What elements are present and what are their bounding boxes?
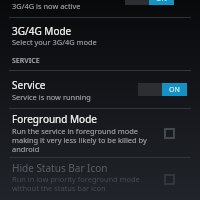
- staticText: Hide Status Bar Icon: [12, 161, 108, 175]
- button[interactable]: 3G/4G Mode: [0, 18, 200, 56]
- staticText: Run the service in foreground mode makin…: [12, 126, 147, 154]
- staticText: Run in low priority foreground mode with…: [12, 174, 140, 193]
- staticText: 3G/4G is now active: [12, 1, 81, 11]
- staticText: Select your 3G/4G mode: [12, 37, 97, 47]
- staticText: 3G/4G Mode: [12, 24, 72, 38]
- staticText: SERVICE: [12, 56, 40, 66]
- staticText: Service is now running: [12, 92, 91, 102]
- staticText: Service: [12, 78, 46, 92]
- button[interactable]: Hide Status Bar Icon: [0, 158, 200, 200]
- button[interactable]: Foreground Mode: [0, 109, 200, 157]
- button[interactable]: 3G/4G is now active: [0, 0, 200, 17]
- staticText: ON: [156, 0, 167, 4]
- staticText: ON: [169, 85, 180, 95]
- button[interactable]: Service: [0, 71, 200, 108]
- staticText: Foreground Mode: [12, 112, 97, 126]
